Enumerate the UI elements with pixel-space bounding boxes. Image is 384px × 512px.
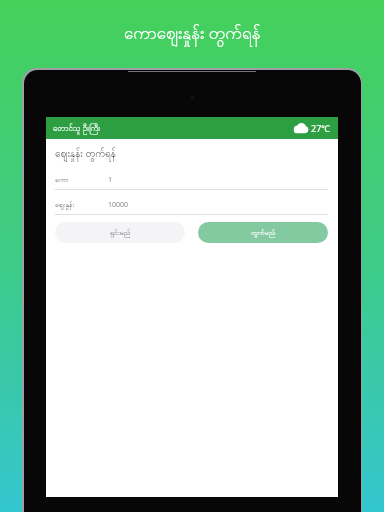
- staticText: ဈေးနှုန်း တွက်ရန်: [55, 146, 116, 162]
- staticText: တောင်သူ ဦးကြီး: [53, 122, 101, 134]
- other: Weather: [293, 123, 308, 134]
- staticText: 27℃: [311, 122, 331, 134]
- staticText: ကောဈေးနှုန်း တွက်ရန်: [124, 21, 261, 47]
- staticText: 10000: [108, 200, 129, 210]
- staticText: ကော: [55, 175, 69, 185]
- staticText: တွက်မည်: [251, 228, 276, 238]
- button[interactable]: တွက်မည်: [198, 222, 328, 243]
- button[interactable]: ရှင်းမည်: [55, 222, 185, 243]
- staticText: ဈေးနှုန်း: [55, 200, 75, 210]
- staticText: 1: [108, 175, 113, 185]
- staticText: ရှင်းမည်: [110, 228, 131, 238]
